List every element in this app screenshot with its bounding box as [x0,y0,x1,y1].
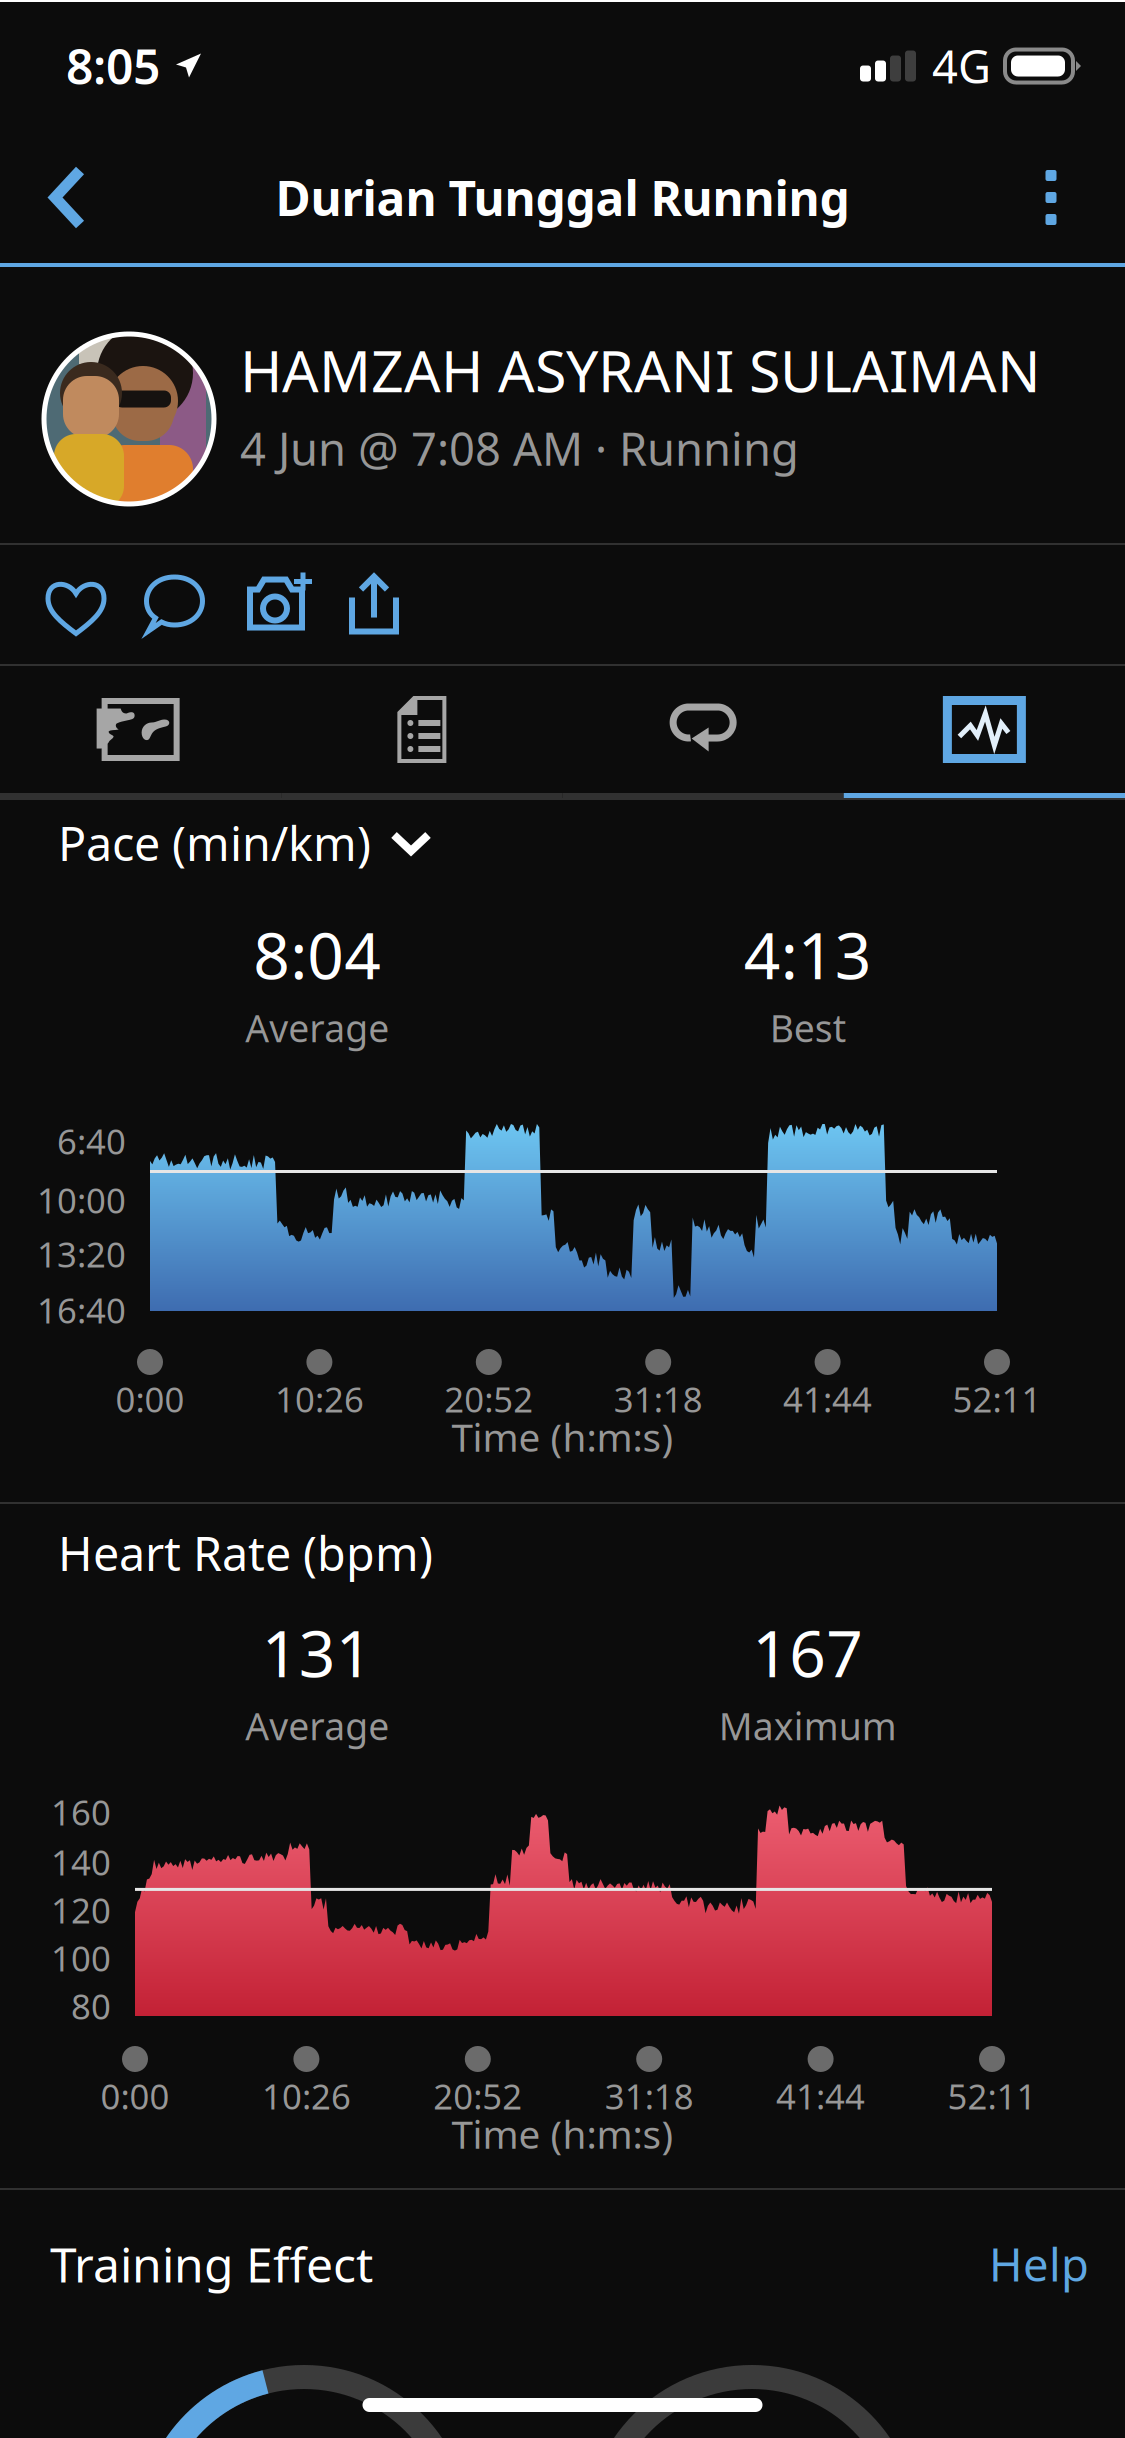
staticText: Average [245,1701,389,1751]
staticText: Heart Rate (bpm) [58,1522,433,1584]
staticText: 80 [71,1983,111,2029]
button[interactable]: Add photo [240,568,312,640]
button[interactable]: More options [995,136,1107,258]
button[interactable]: Share [346,568,402,640]
staticText: 20:52 [444,1376,533,1422]
button[interactable]: Laps [562,666,844,793]
staticText: 31:18 [614,1376,703,1422]
staticText: Training Effect [50,2232,373,2296]
staticText: Help [989,2234,1089,2294]
staticText: 100 [51,1935,111,1981]
staticText: 13:20 [37,1231,126,1277]
button[interactable]: Details [281,666,562,793]
staticText: 8:05 [66,34,160,98]
button[interactable]: Help [989,2234,1089,2294]
staticText: 10:26 [262,2073,351,2119]
staticText: 41:44 [776,2073,865,2119]
staticText: 10:26 [275,1376,364,1422]
staticText: 20:52 [433,2073,522,2119]
staticText: Durian Tunggal Running [275,166,849,229]
staticText: 167 [752,1610,863,1695]
staticText: Average [245,1003,389,1053]
staticText: 0:00 [115,1376,184,1422]
button[interactable]: Charts [844,666,1125,793]
staticText: 6:40 [57,1118,126,1164]
button[interactable]: Comment [140,568,206,640]
staticText: 8:04 [253,912,381,997]
staticText: 52:11 [947,2073,1036,2119]
staticText: 4:13 [744,912,872,997]
button[interactable]: Map [0,666,281,793]
staticText: 131 [262,1610,373,1695]
button[interactable]: Like [40,568,106,640]
staticText: 10:00 [37,1177,126,1223]
staticText: 140 [51,1839,111,1885]
button[interactable]: Back [18,136,118,258]
staticText: Pace (min/km) [58,812,371,874]
staticText: Time (h:m:s) [451,2108,673,2159]
staticText: Best [770,1003,846,1053]
staticText: 160 [51,1789,111,1835]
staticText: HAMZAH ASYRANI SULAIMAN [240,332,1041,408]
staticText: Maximum [719,1701,897,1751]
staticText: 4 Jun @ 7:08 AM · Running [240,418,799,478]
staticText: 31:18 [605,2073,694,2119]
staticText: 52:11 [952,1376,1041,1422]
staticText: 4G [932,36,991,96]
staticText: Time (h:m:s) [451,1411,673,1462]
staticText: 120 [51,1887,111,1933]
staticText: 0:00 [100,2073,169,2119]
staticText: 16:40 [37,1287,126,1333]
staticText: 41:44 [783,1376,872,1422]
